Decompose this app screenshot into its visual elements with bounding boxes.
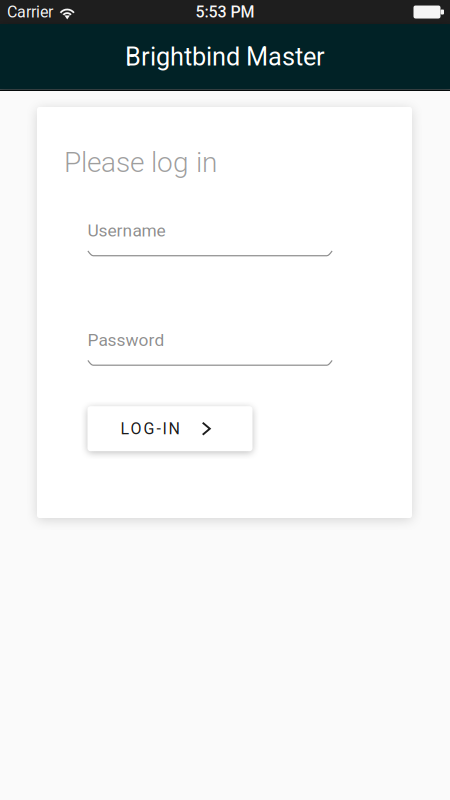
- staticText: Username: [87, 220, 165, 241]
- button[interactable]: Username: [87, 212, 332, 257]
- staticText: Please log in: [64, 146, 217, 179]
- staticText: 5:53 PM: [195, 3, 254, 21]
- staticText: Brightbind Master: [125, 42, 325, 72]
- staticText: LOG-IN: [120, 419, 179, 438]
- staticText: Password: [87, 330, 164, 350]
- button[interactable]: LOG-IN: [87, 406, 252, 451]
- button[interactable]: Password: [87, 321, 332, 366]
- staticText: Carrier: [7, 3, 53, 21]
